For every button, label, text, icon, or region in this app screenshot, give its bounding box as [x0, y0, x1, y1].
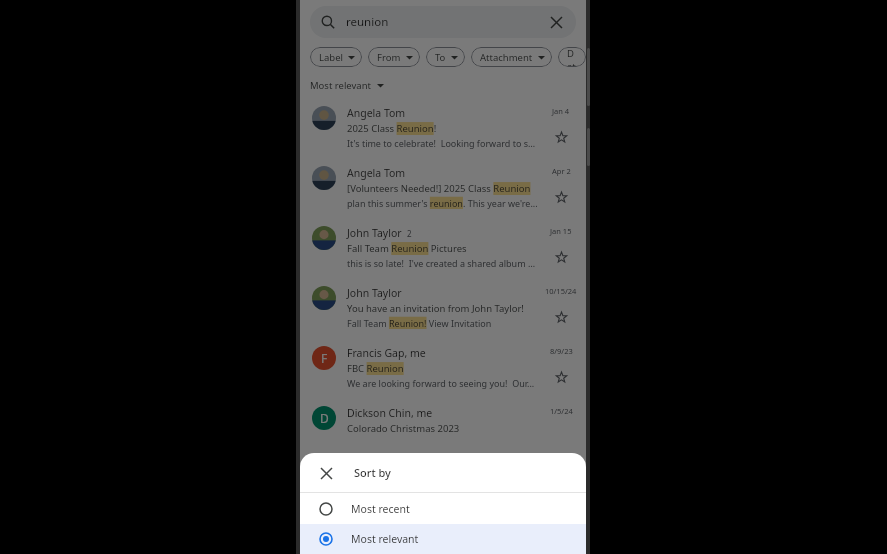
staticText: FBC Reunion — [347, 362, 404, 375]
button[interactable]: D — [300, 399, 586, 459]
button[interactable]: Star — [553, 249, 569, 265]
button[interactable]: To — [426, 47, 465, 67]
button[interactable]: From — [368, 47, 420, 67]
button[interactable]: Most relevant — [310, 77, 384, 93]
staticText: D — [320, 410, 329, 426]
staticText: plan this summer's reunion. This year we… — [347, 197, 538, 209]
staticText: Date — [567, 47, 579, 67]
staticText: John Taylor — [347, 286, 402, 300]
button[interactable]: F — [300, 339, 586, 399]
staticText: We are looking forward to seeing you! Ou… — [347, 377, 535, 389]
staticText: Jan 15 — [550, 226, 572, 236]
button[interactable]: Star — [553, 309, 569, 325]
staticText: You have an invitation from John Taylor! — [347, 302, 524, 315]
staticText: 2 — [407, 228, 412, 239]
staticText: Angela Tom — [347, 106, 406, 120]
staticText: 8/9/23 — [550, 346, 573, 356]
staticText: Most relevant — [310, 79, 371, 92]
staticText: Apr 2 — [552, 166, 571, 176]
button[interactable]: Search — [310, 6, 576, 38]
other: Search — [321, 15, 335, 29]
button[interactable]: Most recent — [300, 493, 586, 524]
staticText: Angela Tom — [347, 166, 406, 180]
button[interactable]: Angela Tom — [300, 159, 586, 219]
staticText: Dickson Chin, me — [347, 406, 433, 420]
staticText: Attachment — [480, 51, 533, 64]
button[interactable]: Star — [553, 189, 569, 205]
staticText: reunion — [346, 14, 389, 30]
staticText: Jan 4 — [552, 106, 570, 116]
staticText: Sort by — [354, 465, 391, 480]
staticText: 10/15/24 — [545, 286, 577, 296]
staticText: From — [377, 51, 401, 64]
button[interactable]: Label — [310, 47, 362, 67]
staticText: Fall Team Reunion Pictures — [347, 242, 467, 255]
staticText: 2025 Class Reunion! — [347, 122, 437, 135]
button[interactable]: Clear search — [547, 13, 565, 31]
staticText: [Volunteers Needed!] 2025 Class Reunion — [347, 182, 531, 195]
staticText: F — [321, 350, 328, 366]
staticText: John Taylor — [347, 226, 402, 240]
staticText: To — [435, 51, 446, 64]
staticText: Francis Gap, me — [347, 346, 426, 360]
staticText: Colorado Christmas 2023 — [347, 422, 460, 435]
staticText: Most recent — [351, 502, 410, 516]
staticText: Fall Team Reunion! View Invitation — [347, 317, 492, 329]
button[interactable]: John Taylor — [300, 219, 586, 279]
button[interactable]: Star — [553, 129, 569, 145]
staticText: Most relevant — [351, 532, 419, 546]
button[interactable]: Angela Tom — [300, 99, 586, 159]
button[interactable]: Close — [316, 463, 336, 483]
button[interactable]: John Taylor — [300, 279, 586, 339]
staticText: It's time to celebrate! Looking forward … — [347, 137, 538, 149]
button[interactable]: Attachment — [471, 47, 552, 67]
staticText: this is so late! I've created a shared a… — [347, 257, 538, 269]
button[interactable]: Date — [558, 47, 586, 67]
staticText: Label — [319, 51, 343, 64]
staticText: 1/5/24 — [550, 406, 573, 416]
button[interactable]: Star — [553, 369, 569, 385]
button[interactable]: Most relevant — [300, 524, 586, 554]
